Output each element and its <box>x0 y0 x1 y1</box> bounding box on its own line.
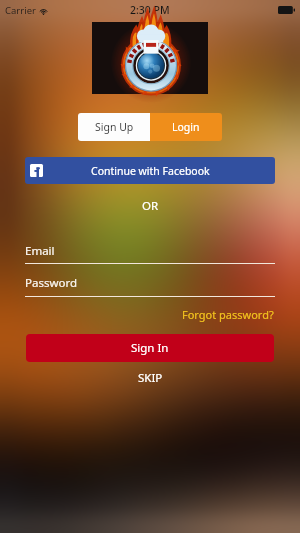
button[interactable]: Sign In <box>26 334 274 362</box>
staticText: Continue with Facebook <box>91 164 210 178</box>
button[interactable]: Sign Up <box>78 113 150 141</box>
staticText: 2:30 PM <box>130 3 170 17</box>
button[interactable]: Forgot password? <box>182 307 274 322</box>
staticText: Login <box>172 120 200 134</box>
staticText: Password <box>25 275 78 291</box>
staticText: Sign In <box>131 340 169 356</box>
button[interactable]: Continue with Facebook <box>25 157 275 184</box>
staticText: Sign Up <box>95 120 134 134</box>
staticText: Email <box>25 243 55 259</box>
staticText: OR <box>142 198 159 214</box>
button[interactable]: Login <box>150 113 222 141</box>
button[interactable]: Password <box>25 275 275 299</box>
button[interactable]: SKIP <box>128 367 173 385</box>
button[interactable]: Email <box>25 243 275 267</box>
staticText: Carrier <box>5 4 36 17</box>
other: Wi-Fi <box>39 7 48 16</box>
